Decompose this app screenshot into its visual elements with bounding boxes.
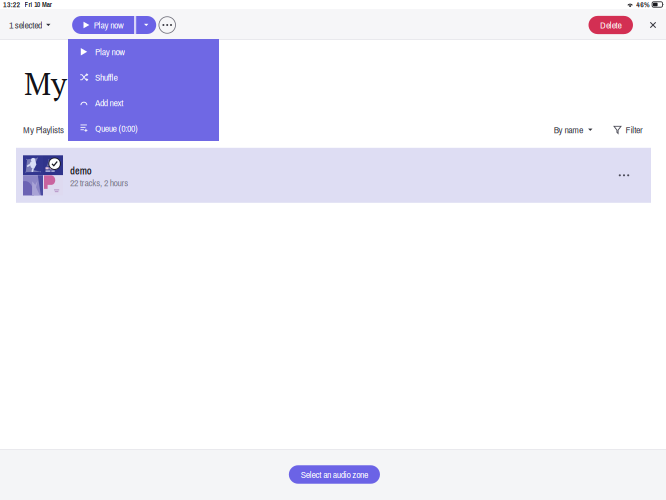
staticText: Play now [94, 18, 124, 31]
staticText: Delete [600, 18, 621, 31]
button[interactable]: More options [157, 16, 178, 33]
staticText: 1 selected [9, 18, 42, 31]
button[interactable]: Add next [68, 90, 219, 115]
button[interactable]: Play now [72, 16, 134, 34]
staticText: demo [70, 164, 92, 177]
staticText: By name [554, 123, 583, 136]
button[interactable]: Shuffle [68, 64, 219, 90]
staticText: Queue (0:00) [95, 122, 138, 135]
staticText: My Playlists [23, 123, 64, 136]
button[interactable]: By name [554, 123, 592, 137]
button[interactable]: More play actions [136, 16, 156, 34]
staticText: Fri 10 Mar [25, 0, 52, 9]
button[interactable]: Playlist options [610, 161, 638, 189]
staticText: Add next [95, 96, 123, 109]
staticText: 13:22 [3, 0, 21, 10]
button[interactable]: Filter [613, 123, 643, 137]
staticText: 22 tracks, 2 hours [70, 176, 128, 189]
staticText: Filter [625, 123, 643, 136]
staticText: Shuffle [95, 71, 117, 84]
button[interactable]: 1 selected [4, 16, 55, 33]
button[interactable]: Play now [68, 39, 219, 64]
button[interactable]: Close [646, 16, 660, 33]
staticText: My Playlists [24, 62, 193, 104]
staticText: 46% [636, 0, 650, 10]
staticText: Select an audio zone [301, 468, 368, 481]
staticText: Play now [95, 45, 125, 58]
button[interactable]: Select an audio zone [289, 465, 380, 484]
button[interactable]: Queue (0:00) [68, 115, 219, 141]
button[interactable]: Delete [588, 16, 633, 34]
button[interactable]: My Playlists [19, 123, 77, 137]
